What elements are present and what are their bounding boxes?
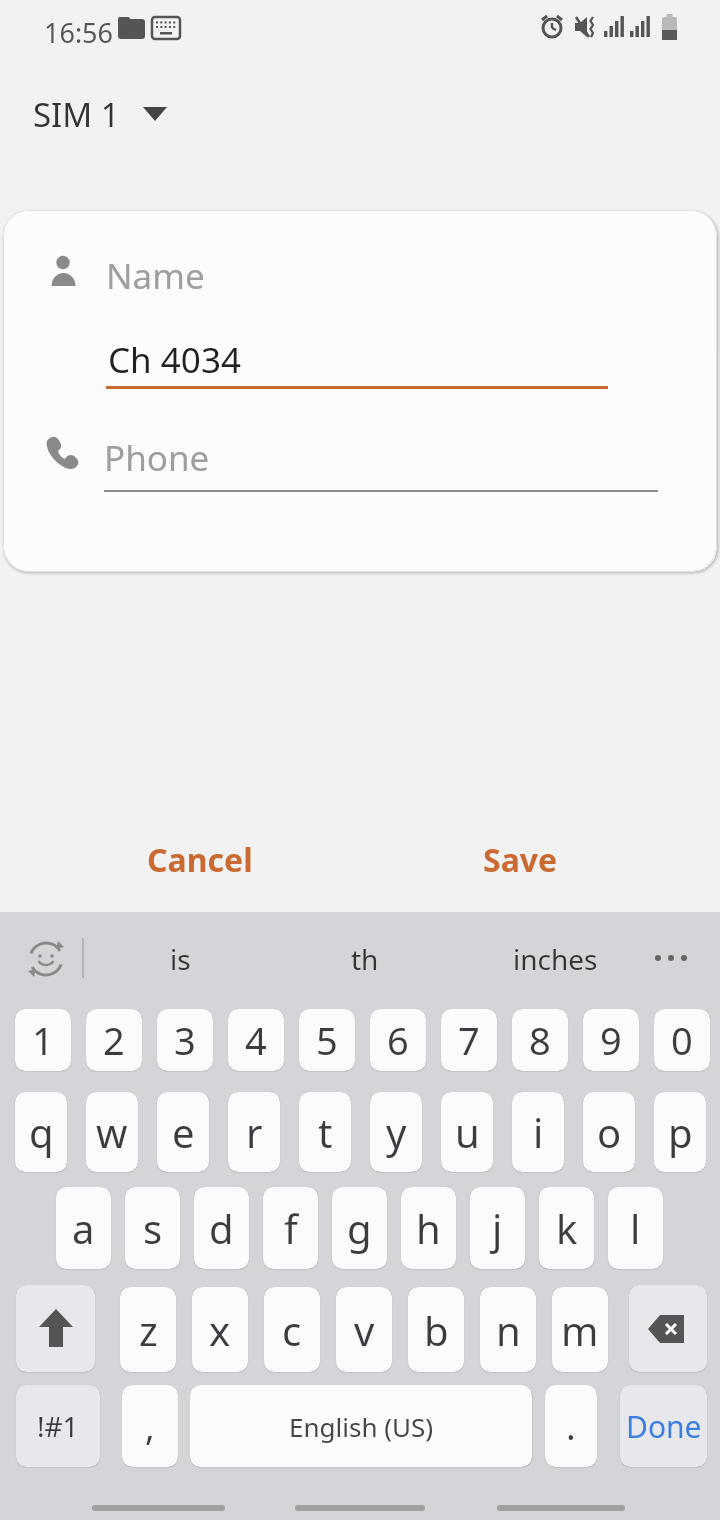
button[interactable]: h xyxy=(401,1187,456,1269)
staticText: a xyxy=(72,1201,95,1255)
button[interactable]: inches xyxy=(470,932,640,986)
staticText: 8 xyxy=(529,1014,551,1066)
staticText: d xyxy=(209,1201,234,1255)
button[interactable]: u xyxy=(441,1092,493,1172)
button[interactable]: th xyxy=(285,932,445,986)
staticText: English (US) xyxy=(289,1409,434,1444)
staticText: s xyxy=(143,1201,163,1255)
button[interactable]: 5 xyxy=(299,1009,355,1071)
button[interactable]: y xyxy=(370,1092,422,1172)
button[interactable]: Done xyxy=(620,1385,707,1467)
button[interactable]: j xyxy=(470,1187,525,1269)
staticText: r xyxy=(246,1105,263,1159)
button[interactable]: Cancel xyxy=(110,832,290,888)
staticText: b xyxy=(424,1303,449,1357)
staticText: Cancel xyxy=(147,838,253,882)
button[interactable]: g xyxy=(332,1187,387,1269)
staticText: 0 xyxy=(671,1014,693,1066)
staticText: 2 xyxy=(103,1014,125,1066)
button[interactable]: w xyxy=(86,1092,138,1172)
staticText: m xyxy=(561,1303,599,1357)
button[interactable]: l xyxy=(608,1187,663,1269)
button[interactable]: . xyxy=(545,1385,597,1467)
staticText: 3 xyxy=(174,1014,196,1066)
staticText: j xyxy=(492,1201,503,1255)
button[interactable]: d xyxy=(194,1187,249,1269)
staticText: u xyxy=(455,1105,480,1159)
button[interactable]: b xyxy=(408,1287,464,1372)
button[interactable]: 6 xyxy=(370,1009,426,1071)
staticText: 9 xyxy=(600,1014,622,1066)
staticText: x xyxy=(209,1303,231,1357)
staticText: o xyxy=(597,1105,622,1159)
staticText: g xyxy=(347,1201,372,1255)
staticText: i xyxy=(533,1105,544,1159)
staticText: , xyxy=(145,1402,155,1451)
staticText: Ch 4034 xyxy=(108,336,241,384)
staticText: is xyxy=(170,940,191,978)
staticText: Name xyxy=(106,252,205,300)
button[interactable]: c xyxy=(264,1287,320,1372)
staticText: Done xyxy=(626,1406,702,1447)
staticText: Save xyxy=(483,838,558,882)
staticText: inches xyxy=(513,940,598,978)
button[interactable]: s xyxy=(125,1187,180,1269)
button[interactable]: z xyxy=(120,1287,176,1372)
staticText: w xyxy=(96,1105,128,1159)
button[interactable]: 1 xyxy=(15,1009,71,1071)
staticText: 4 xyxy=(245,1014,267,1066)
button[interactable]: , xyxy=(122,1385,178,1467)
button[interactable]: SIM 1 xyxy=(20,90,180,140)
button[interactable]: is xyxy=(100,932,260,986)
button[interactable] xyxy=(16,1285,95,1372)
staticText: k xyxy=(556,1201,578,1255)
button[interactable]: f xyxy=(263,1187,318,1269)
button[interactable]: a xyxy=(56,1187,111,1269)
button[interactable]: n xyxy=(480,1287,536,1372)
button[interactable]: q xyxy=(15,1092,67,1172)
button[interactable]: k xyxy=(539,1187,594,1269)
button[interactable]: 3 xyxy=(157,1009,213,1071)
staticText: y xyxy=(386,1105,407,1159)
staticText: . xyxy=(566,1402,576,1451)
button[interactable]: e xyxy=(157,1092,209,1172)
button[interactable]: v xyxy=(336,1287,392,1372)
staticText: z xyxy=(139,1303,158,1357)
button[interactable]: m xyxy=(552,1287,608,1372)
button[interactable]: t xyxy=(299,1092,351,1172)
button[interactable]: i xyxy=(512,1092,564,1172)
staticText: n xyxy=(496,1303,521,1357)
button[interactable] xyxy=(629,1285,707,1372)
staticText: c xyxy=(282,1303,302,1357)
staticText: v xyxy=(354,1303,375,1357)
staticText: SIM 1 xyxy=(33,92,120,137)
staticText: e xyxy=(172,1105,195,1159)
button[interactable]: Save xyxy=(430,832,610,888)
staticText: 1 xyxy=(32,1014,54,1066)
button[interactable]: 0 xyxy=(654,1009,710,1071)
staticText: 7 xyxy=(458,1014,480,1066)
button[interactable]: 7 xyxy=(441,1009,497,1071)
staticText: h xyxy=(416,1201,441,1255)
button[interactable]: o xyxy=(583,1092,635,1172)
staticText: l xyxy=(630,1201,641,1255)
staticText: t xyxy=(318,1105,333,1159)
button[interactable]: 9 xyxy=(583,1009,639,1071)
button[interactable]: 2 xyxy=(86,1009,142,1071)
staticText: 6 xyxy=(387,1014,409,1066)
staticText: th xyxy=(351,940,379,978)
button[interactable]: 4 xyxy=(228,1009,284,1071)
button[interactable] xyxy=(652,952,692,964)
staticText: f xyxy=(284,1201,298,1255)
staticText: q xyxy=(29,1105,54,1159)
button[interactable]: x xyxy=(192,1287,248,1372)
staticText: Phone xyxy=(104,434,210,482)
button[interactable]: !#1 xyxy=(16,1385,100,1467)
button[interactable]: r xyxy=(228,1092,280,1172)
staticText: 5 xyxy=(316,1014,338,1066)
staticText: 16:56 xyxy=(44,14,114,51)
button[interactable]: p xyxy=(654,1092,706,1172)
button[interactable]: English (US) xyxy=(190,1385,532,1467)
button[interactable]: 8 xyxy=(512,1009,568,1071)
staticText: p xyxy=(668,1105,693,1159)
